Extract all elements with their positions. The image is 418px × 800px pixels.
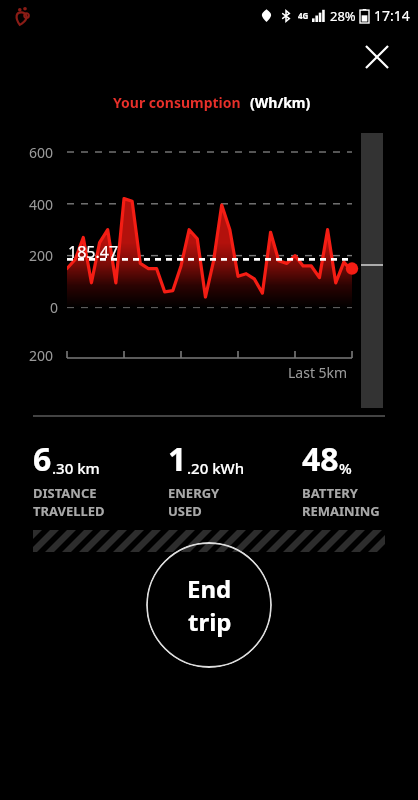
staticText: .30 km: [52, 458, 100, 478]
staticText: 6: [33, 437, 52, 481]
staticText: 17:14: [374, 6, 410, 25]
staticText: TRAVELLED: [33, 502, 105, 520]
staticText: ENERGY: [168, 484, 220, 502]
staticText: Your consumption: [113, 93, 241, 112]
staticText: 185.47: [68, 241, 119, 263]
staticText: USED: [168, 502, 202, 520]
button[interactable]: 48: [302, 437, 380, 520]
staticText: .20 kWh: [187, 458, 245, 478]
staticText: BATTERY: [302, 484, 358, 502]
staticText: 0: [50, 298, 59, 317]
button[interactable]: 1: [168, 437, 245, 520]
staticText: REMAINING: [302, 502, 380, 520]
staticText: 200: [29, 346, 54, 365]
staticText: 200: [29, 246, 54, 265]
staticText: trip: [188, 605, 232, 638]
staticText: 28%: [330, 7, 356, 25]
staticText: 400: [29, 195, 54, 214]
staticText: 1: [168, 437, 187, 481]
button[interactable]: End: [146, 542, 272, 668]
staticText: Last 5km: [288, 363, 348, 382]
button[interactable]: Close: [354, 34, 400, 80]
staticText: 4G: [298, 10, 309, 21]
staticText: 48: [302, 437, 339, 481]
staticText: 600: [29, 143, 54, 162]
staticText: %: [339, 458, 352, 478]
staticText: (Wh/km): [250, 93, 311, 112]
button[interactable]: 6: [33, 437, 105, 520]
staticText: DISTANCE: [33, 484, 97, 502]
staticText: End: [187, 572, 232, 605]
